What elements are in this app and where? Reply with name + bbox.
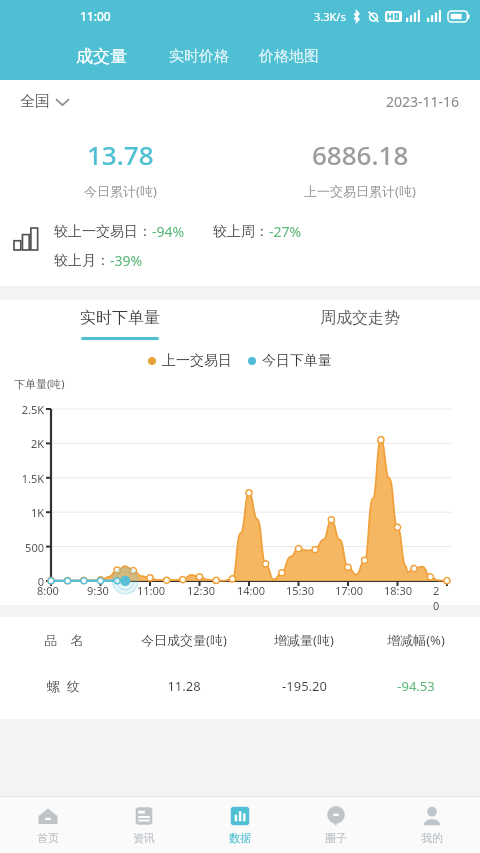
staticText: 11:00 [137,583,166,598]
staticText: 全国 [20,92,50,111]
staticText: 2023-11-16 [386,92,460,111]
staticText: 17:00 [335,583,364,598]
staticText: 12:30 [187,583,216,598]
staticText: 实时下单量 [80,308,160,328]
staticText: 18:30 [384,583,413,598]
staticText: 较上周： [213,223,269,241]
button[interactable]: 实时下单量 [0,308,240,340]
staticText: -94% [152,222,185,241]
staticText: -39% [110,251,143,270]
staticText: 较上一交易日： [54,223,152,241]
button[interactable]: 实时价格 [159,39,239,74]
staticText: 实时价格 [169,47,229,66]
staticText: 较上月： [54,252,110,270]
staticText: 0 [0,574,44,589]
staticText: 6886.18 [312,137,409,172]
staticText: 螺 纹 [47,677,80,695]
staticText: 今日下单量 [262,352,332,370]
staticText: 500 [0,540,44,555]
staticText: 成交量 [76,46,127,67]
staticText: 8:00 [37,583,59,598]
staticText: 1.5K [0,471,44,486]
staticText: 1K [0,505,44,520]
button[interactable]: 螺 纹 [0,677,480,695]
staticText: 首页 [37,831,59,845]
staticText: 13.78 [87,137,154,172]
staticText: 9:30 [87,583,109,598]
staticText: 增减量(吨) [274,631,334,649]
button[interactable]: 周成交走势 [240,308,480,340]
staticText: 今日成交量(吨) [141,631,227,649]
button[interactable]: 数据 [192,797,288,853]
staticText: 品 名 [44,631,84,649]
staticText: 上一交易日累计(吨) [304,182,416,200]
button[interactable]: 圈子 [288,797,384,853]
staticText: 今日累计(吨) [84,182,157,200]
button[interactable]: 价格地图 [249,39,329,74]
staticText: 周成交走势 [320,308,400,328]
staticText: 3.3K/s [314,9,346,24]
staticText: 11.28 [167,677,201,695]
staticText: 下单量(吨) [14,376,65,391]
staticText: -195.20 [282,677,327,695]
staticText: 2.5K [0,402,44,417]
button[interactable]: 首页 [0,797,96,853]
button[interactable]: 全国 [20,92,69,111]
staticText: 增减幅(%) [387,631,445,649]
staticText: 15:30 [286,583,315,598]
staticText: 价格地图 [259,47,319,66]
staticText: 14:00 [237,583,266,598]
staticText: 2K [0,436,44,451]
button[interactable]: 成交量 [62,38,141,75]
button[interactable]: 资讯 [96,797,192,853]
staticText: 11:00 [80,8,111,24]
staticText: 上一交易日 [162,352,232,370]
staticText: 我的 [421,831,443,845]
staticText: -94.53 [397,677,435,695]
staticText: -27% [269,222,302,241]
staticText: 资讯 [133,831,155,845]
staticText: 数据 [229,831,251,845]
staticText: 圈子 [325,831,347,845]
button[interactable]: 我的 [384,797,480,853]
